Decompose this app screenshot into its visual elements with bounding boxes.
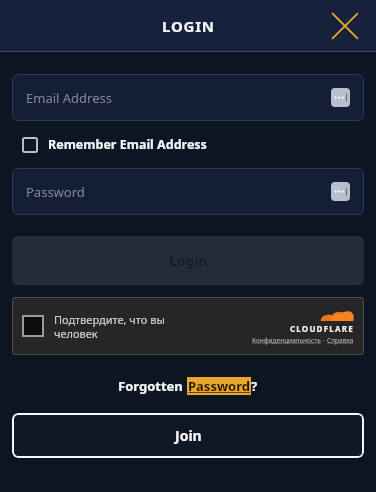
staticText: Подтвердите, что вы человек [54, 312, 165, 341]
staticText: · [321, 336, 327, 345]
staticText: Password [26, 183, 85, 201]
staticText: Password [188, 377, 250, 395]
staticText: Login [169, 251, 208, 270]
button[interactable]: Remember Email Address [22, 136, 207, 153]
staticText: Join [175, 426, 202, 445]
staticText: Email Address [26, 89, 112, 107]
button[interactable]: Verify you are human checkbox [22, 315, 44, 337]
button[interactable]: Autofill [331, 182, 350, 201]
button[interactable]: Autofill [331, 88, 350, 107]
staticText: Forgotten [118, 377, 187, 395]
staticText: LOGIN [162, 16, 215, 36]
staticText: CLOUDFLARE [290, 323, 354, 334]
button[interactable]: Конфиденциальность [252, 336, 321, 345]
button[interactable]: Close [326, 7, 364, 45]
button[interactable]: Forgotten [118, 377, 258, 395]
button[interactable]: Email Address [12, 74, 364, 121]
button[interactable]: Справка [327, 336, 354, 345]
button[interactable]: Password [12, 168, 364, 215]
staticText: Remember Email Address [48, 136, 207, 153]
staticText: ? [251, 377, 258, 395]
button[interactable]: Join [12, 413, 364, 458]
